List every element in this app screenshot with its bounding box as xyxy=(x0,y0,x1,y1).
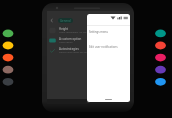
button[interactable]: Back xyxy=(48,17,54,23)
button[interactable]: Autostrategies xyxy=(47,45,130,55)
button[interactable]: General xyxy=(58,18,73,23)
staticText: Tracker. Mass ability list 2019 shared a… xyxy=(59,51,99,54)
button[interactable]: Height xyxy=(47,25,130,35)
staticText: Edit user notifications xyxy=(89,45,118,49)
staticText: A custom option xyxy=(59,37,82,41)
staticText: General xyxy=(60,19,71,23)
staticText: Height xyxy=(59,27,69,31)
staticText: Settings menu xyxy=(89,30,109,34)
staticText: Lorem ipsum xyxy=(59,41,73,44)
button[interactable]: A custom option xyxy=(47,35,130,45)
staticText: Autostrategies xyxy=(59,47,79,51)
staticText: About centimeters 170 cm and kilograms c… xyxy=(59,31,105,34)
